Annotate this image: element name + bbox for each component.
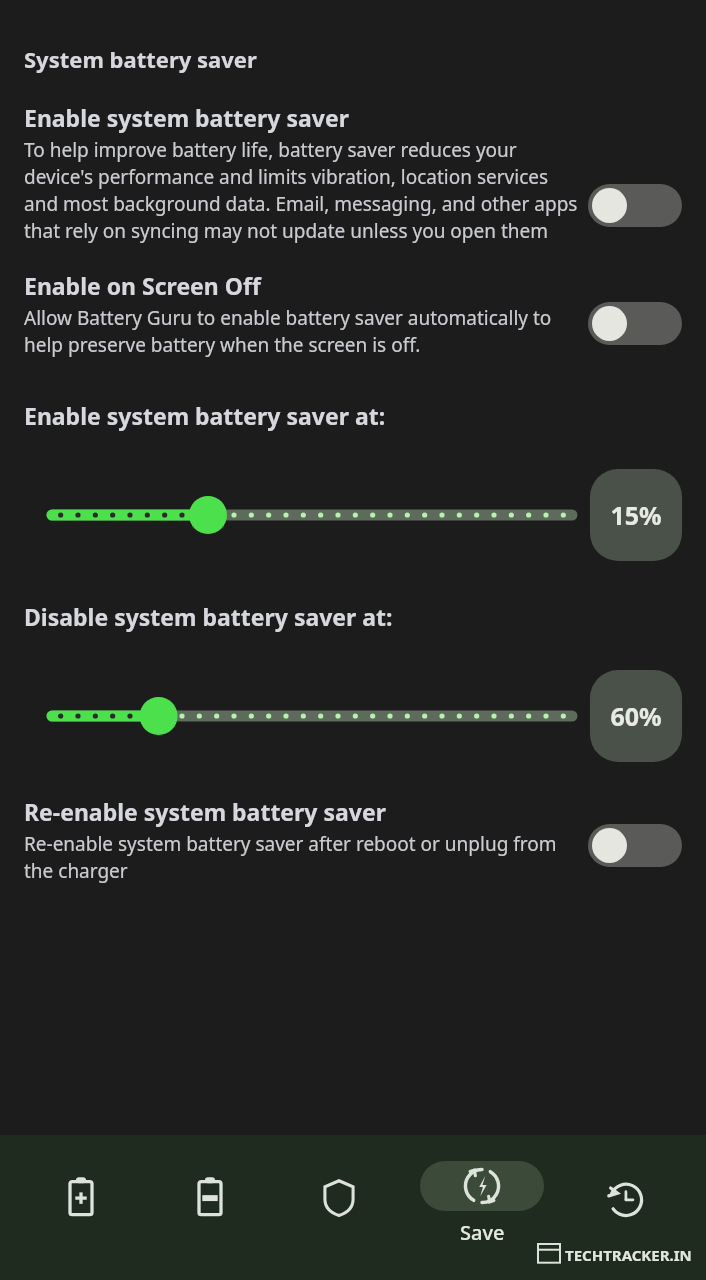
button[interactable]: History <box>577 1161 673 1245</box>
button[interactable]: Re-enable system battery saver <box>0 796 706 884</box>
button[interactable]: Toggle <box>588 302 682 345</box>
staticText: 15% <box>610 498 662 532</box>
button[interactable]: Toggle <box>588 184 682 227</box>
button[interactable]: Enable system battery saver <box>0 102 706 244</box>
button[interactable]: 15% <box>590 469 682 561</box>
button[interactable]: Protection <box>291 1161 387 1245</box>
staticText: TECHTRACKER.IN <box>565 1245 692 1265</box>
staticText: Save <box>460 1219 505 1246</box>
button[interactable]: Battery level slider <box>52 686 572 746</box>
button[interactable]: 60% <box>590 670 682 762</box>
staticText: Disable system battery saver at: <box>24 601 393 632</box>
button[interactable]: Battery charge <box>33 1161 129 1245</box>
button[interactable]: Battery level slider <box>52 485 572 545</box>
button[interactable]: Save <box>420 1161 544 1246</box>
button[interactable]: Battery discharge <box>162 1161 258 1245</box>
staticText: To help improve battery life, battery sa… <box>24 137 578 244</box>
staticText: System battery saver <box>24 44 257 74</box>
staticText: Enable on Screen Off <box>24 270 261 301</box>
staticText: Enable system battery saver <box>24 102 349 133</box>
staticText: Re-enable system battery saver after reb… <box>24 831 578 884</box>
button[interactable]: Toggle <box>588 824 682 867</box>
staticText: 60% <box>610 699 662 733</box>
staticText: Re-enable system battery saver <box>24 796 386 827</box>
button[interactable]: Enable on Screen Off <box>0 270 706 358</box>
staticText: Allow Battery Guru to enable battery sav… <box>24 305 578 358</box>
staticText: Enable system battery saver at: <box>24 400 386 431</box>
